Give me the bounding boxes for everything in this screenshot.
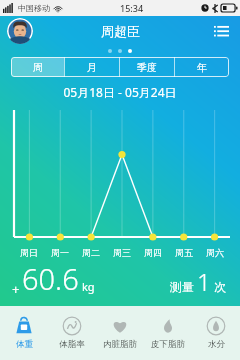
staticText: 周四 [144,247,162,258]
staticText: 体重 [16,339,33,350]
staticText: 周二 [82,247,100,258]
staticText: 次 [214,279,226,294]
staticText: 周五 [175,247,193,258]
button[interactable]: 皮下脂肪 [144,306,192,360]
button[interactable]: 季度 [120,57,174,77]
staticText: 内脏脂肪 [103,339,137,350]
staticText: 季度 [137,61,157,74]
staticText: + [12,280,20,298]
button[interactable]: 年 [175,57,229,77]
staticText: 周三 [113,247,131,258]
button[interactable]: 体重 [0,306,48,360]
button[interactable]: Menu [210,20,232,42]
staticText: 15:34 [120,2,144,14]
staticText: 1 [197,265,211,298]
staticText: 周一 [51,247,69,258]
staticText: 周日 [20,247,38,258]
staticText: 周超臣 [101,23,140,39]
button[interactable]: 体脂率 [48,306,96,360]
staticText: kg [82,279,95,294]
button[interactable]: 水分 [192,306,240,360]
staticText: 年 [197,61,207,74]
button[interactable]: 月 [65,57,119,77]
button[interactable]: Profile avatar [7,18,33,44]
staticText: 测量 [170,279,194,294]
staticText: 体脂率 [59,339,85,350]
button[interactable]: 内脏脂肪 [96,306,144,360]
staticText: 周 [33,61,43,74]
staticText: 60.6 [22,259,79,298]
button[interactable]: 周 [11,57,64,77]
staticText: 05月18日 - 05月24日 [0,84,240,100]
staticText: 水分 [208,339,225,350]
staticText: 月 [87,61,97,74]
staticText: 中国移动 [18,3,50,13]
staticText: 周六 [206,247,224,258]
staticText: 皮下脂肪 [151,339,185,350]
